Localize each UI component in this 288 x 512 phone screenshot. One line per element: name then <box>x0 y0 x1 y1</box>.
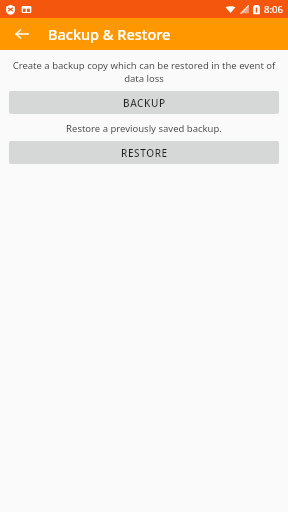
staticText: RESTORE <box>121 146 168 160</box>
staticText: Restore a previously saved backup. <box>5 122 283 135</box>
staticText: Backup & Restore <box>48 24 171 44</box>
button[interactable]: Back <box>8 20 36 48</box>
button[interactable]: BACKUP <box>9 91 279 114</box>
button[interactable]: RESTORE <box>9 141 279 164</box>
staticText: Create a backup copy which can be restor… <box>5 59 283 85</box>
staticText: 8:06 <box>264 3 283 16</box>
staticText: BACKUP <box>123 96 166 110</box>
